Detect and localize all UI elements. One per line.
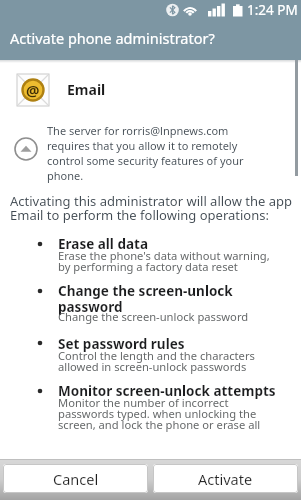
staticText: Monitor the number of incorrect password… <box>58 395 261 432</box>
staticText: 1:24 PM <box>247 1 298 19</box>
staticText: Activating this administrator will allow… <box>10 192 293 224</box>
staticText: Erase the phone's data without warning, … <box>58 248 270 274</box>
staticText: Monitor screen-unlock attempts <box>58 382 276 400</box>
staticText: Email <box>67 80 106 99</box>
staticText: Cancel <box>53 469 99 489</box>
staticText: The server for rorris@lnpnews.com requir… <box>47 123 244 183</box>
staticText: Erase all data <box>58 235 148 253</box>
button[interactable]: Activate <box>153 464 298 493</box>
button[interactable]: Cancel <box>3 464 148 493</box>
staticText: Control the length and the characters al… <box>58 348 255 374</box>
staticText: @ <box>26 80 40 100</box>
staticText: Activate phone administrator? <box>10 28 215 48</box>
staticText: Set password rules <box>58 335 185 353</box>
staticText: Change the screen-unlock password <box>58 309 249 324</box>
staticText: Change the screen-unlock password <box>58 282 233 316</box>
staticText: Activate <box>198 469 253 489</box>
